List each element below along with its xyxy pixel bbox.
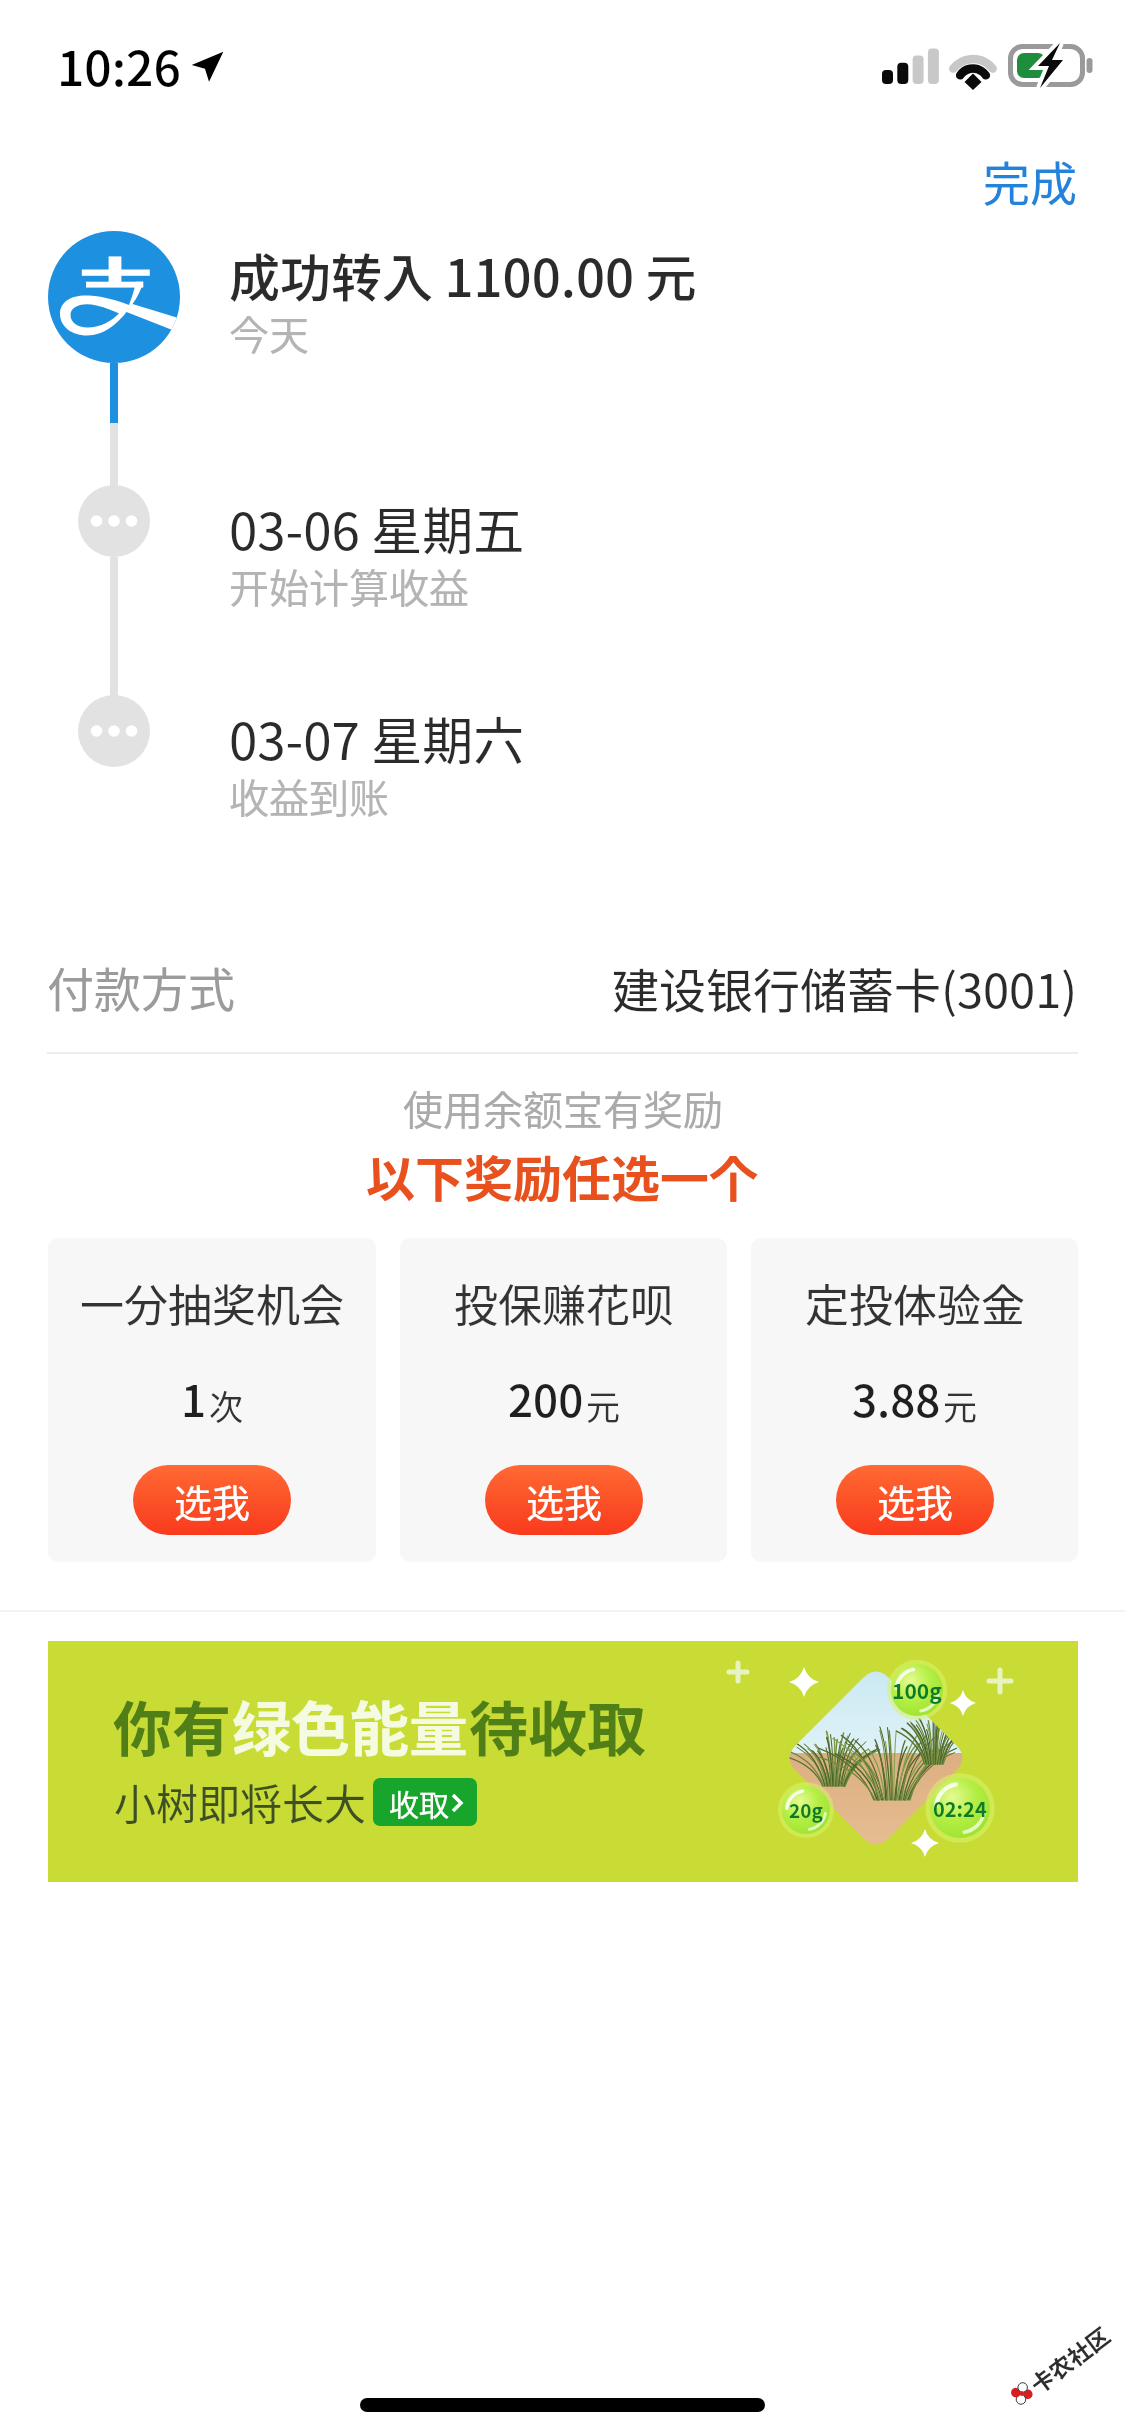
staticText: 完成 [983,146,1077,214]
button[interactable]: 投保赚花呗 [400,1238,727,1562]
staticText: 使用余额宝有奖励 [403,1079,723,1137]
staticText: 100g [892,1675,942,1705]
staticText: 绿色能量 [232,1683,469,1768]
staticText: 元 [586,1381,620,1430]
staticText: 02:24 [933,1794,987,1823]
staticText: 卡农社区 [1022,2318,1114,2397]
staticText: 定投体验金 [805,1271,1025,1335]
staticText: 成功转入 1100.00 元 [229,238,697,312]
staticText: 10:26 [57,30,181,100]
staticText: 开始计算收益 [229,557,469,615]
staticText: 03-06 星期五 [229,491,525,565]
button[interactable]: 付款方式 [47,932,1078,1042]
button[interactable]: 选我 [485,1465,643,1535]
staticText: 收取 [389,1781,449,1824]
button[interactable]: 选我 [836,1465,994,1535]
other: 前往 [452,1794,462,1812]
staticText: 投保赚花呗 [454,1271,674,1335]
staticText: 1 [181,1366,207,1430]
staticText: 小树即将长大 [114,1771,367,1832]
staticText: 选我 [526,1473,603,1528]
staticText: 选我 [174,1473,251,1528]
staticText: 建设银行储蓄卡(3001) [612,953,1078,1021]
staticText: 3.88 [852,1366,941,1430]
staticText: 一分抽奖机会 [80,1271,344,1335]
staticText: 待收取 [469,1683,647,1768]
button[interactable]: 你有 [48,1641,1078,1882]
staticText: 次 [209,1381,243,1430]
staticText: 以下奖励任选一个 [366,1140,759,1211]
staticText: 收益到账 [229,767,389,825]
button[interactable]: 完成 [955,132,1105,228]
button[interactable]: 定投体验金 [751,1238,1078,1562]
staticText: 你有 [113,1683,232,1768]
staticText: 200 [508,1366,584,1430]
staticText: 付款方式 [47,952,235,1020]
button[interactable]: 一分抽奖机会 [48,1238,376,1562]
staticText: 20g [789,1796,823,1824]
button[interactable]: 选我 [133,1465,291,1535]
staticText: 元 [943,1381,977,1430]
staticText: 今天 [229,304,309,362]
staticText: 03-07 星期六 [229,701,525,775]
staticText: 选我 [877,1473,954,1528]
button[interactable]: 收取 [373,1778,477,1826]
